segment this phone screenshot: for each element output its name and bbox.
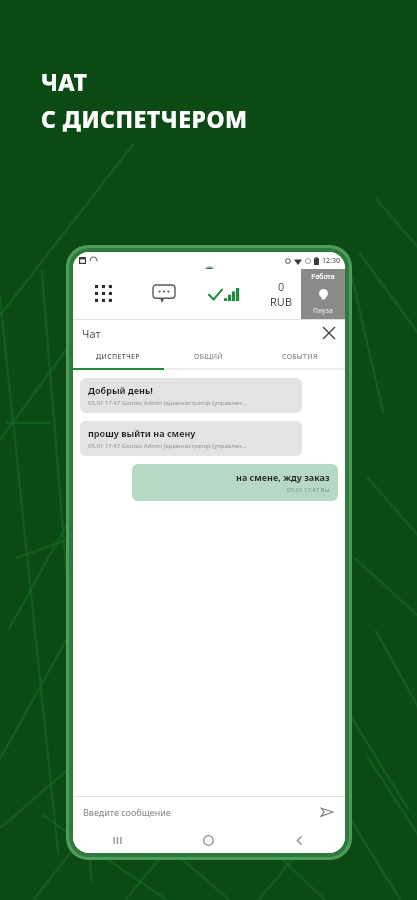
staticText: на смене, жду заказ xyxy=(236,471,330,483)
staticText: прошу выйти на смену xyxy=(88,427,196,439)
staticText: Пауза xyxy=(313,306,333,316)
staticText: С ДИСПЕТЧЕРОМ xyxy=(41,103,248,134)
button[interactable]: ОБЩИЙ xyxy=(163,346,254,368)
button[interactable]: на смене, жду заказ xyxy=(132,464,338,501)
staticText: ДИСПЕТЧЕР xyxy=(96,352,140,362)
button[interactable]: Добрый день! xyxy=(80,378,302,413)
button[interactable]: Статус связи xyxy=(193,269,253,319)
staticText: 05.01 17:47 Вы xyxy=(287,486,330,494)
staticText: ОБЩИЙ xyxy=(194,352,223,362)
staticText: 05.01 17:47 Gootax Admin (администратор … xyxy=(88,399,247,407)
staticText: ЧАТ xyxy=(41,66,88,97)
staticText: Работа xyxy=(311,272,335,282)
button[interactable]: 0 xyxy=(253,269,309,319)
button[interactable]: прошу выйти на смену xyxy=(80,421,302,456)
button[interactable]: СОБЫТИЯ xyxy=(254,346,345,368)
staticText: 05.01 17:47 Gootax Admin (администратор … xyxy=(88,442,247,450)
button[interactable]: Закрыть xyxy=(319,323,339,343)
button[interactable]: Недавние xyxy=(73,827,163,853)
button[interactable]: Назад xyxy=(254,827,345,853)
button[interactable]: Работа xyxy=(301,269,345,319)
staticText: RUB xyxy=(270,294,293,309)
button[interactable]: Меню xyxy=(73,269,135,319)
staticText: 0 xyxy=(278,279,285,294)
staticText: Чат xyxy=(82,326,101,341)
button[interactable]: Чат xyxy=(135,269,193,319)
button[interactable]: ДИСПЕТЧЕР xyxy=(73,346,163,368)
staticText: Добрый день! xyxy=(88,384,153,396)
staticText: СОБЫТИЯ xyxy=(282,352,318,362)
button[interactable]: Отправить xyxy=(317,802,337,822)
staticText: 12:30 xyxy=(322,256,340,266)
button[interactable]: Домой xyxy=(163,827,254,853)
staticText: Введите сообщение xyxy=(83,806,171,818)
